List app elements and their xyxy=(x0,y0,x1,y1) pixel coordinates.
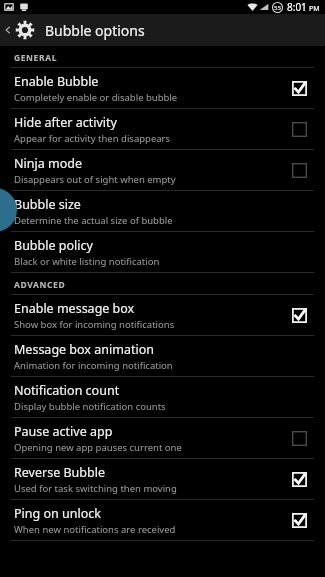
button[interactable]: Unchecked xyxy=(285,156,313,184)
staticText: Completely enable or disable bubble xyxy=(14,91,178,104)
staticText: Reverse Bubble xyxy=(14,464,105,481)
button[interactable]: Ping on unlock xyxy=(0,500,325,540)
staticText: ADVANCED xyxy=(14,279,66,291)
staticText: Black or white listing notification xyxy=(14,255,160,268)
button[interactable]: Checked xyxy=(285,74,313,102)
staticText: Bubble size xyxy=(14,196,81,213)
button[interactable]: Enable message box xyxy=(0,295,325,335)
button[interactable]: Checked xyxy=(285,301,313,329)
staticText: Determine the actual size of bubble xyxy=(14,214,173,227)
button[interactable]: Ninja mode xyxy=(0,150,325,190)
staticText: Bubble policy xyxy=(14,237,93,254)
button[interactable]: Bubble size xyxy=(0,191,325,231)
staticText: Hide after activity xyxy=(14,114,117,131)
button[interactable]: Message box animation xyxy=(0,336,325,376)
staticText: Animation for incoming notification xyxy=(14,359,173,372)
button[interactable]: Unchecked xyxy=(285,115,313,143)
button[interactable]: Enable Bubble xyxy=(0,68,325,108)
staticText: Pause active app xyxy=(14,423,113,440)
staticText: Bubble options xyxy=(45,21,145,40)
staticText: 55 xyxy=(274,4,281,12)
button[interactable]: Pause active app xyxy=(0,418,325,458)
other: Floating bubble xyxy=(0,0,325,577)
staticText: Display bubble notification counts xyxy=(14,400,166,413)
staticText: Opening new app pauses current one xyxy=(14,441,182,454)
staticText: Enable Bubble xyxy=(14,73,99,90)
button[interactable]: Checked xyxy=(285,465,313,493)
staticText: GENERAL xyxy=(14,52,57,64)
button[interactable]: Checked xyxy=(285,506,313,534)
staticText: Show box for incoming notifications xyxy=(14,318,175,331)
button[interactable]: Bubble policy xyxy=(0,232,325,272)
staticText: Disappears out of sight when empty xyxy=(14,173,176,186)
button[interactable]: Reverse Bubble xyxy=(0,459,325,499)
button[interactable]: Unchecked xyxy=(285,424,313,452)
staticText: 8:01 xyxy=(287,0,307,14)
staticText: PM xyxy=(309,4,320,14)
button[interactable]: Notification count xyxy=(0,377,325,417)
staticText: Enable message box xyxy=(14,300,135,317)
staticText: Notification count xyxy=(14,382,120,399)
button[interactable]: Hide after activity xyxy=(0,109,325,149)
staticText: When new notifications are received xyxy=(14,523,176,536)
button[interactable]: Navigate up xyxy=(0,14,37,46)
staticText: Appear for activity then disappears xyxy=(14,132,171,145)
staticText: Ping on unlock xyxy=(14,505,101,522)
staticText: Ninja mode xyxy=(14,155,82,172)
staticText: Message box animation xyxy=(14,341,154,358)
staticText: Used for task switching then moving xyxy=(14,482,177,495)
